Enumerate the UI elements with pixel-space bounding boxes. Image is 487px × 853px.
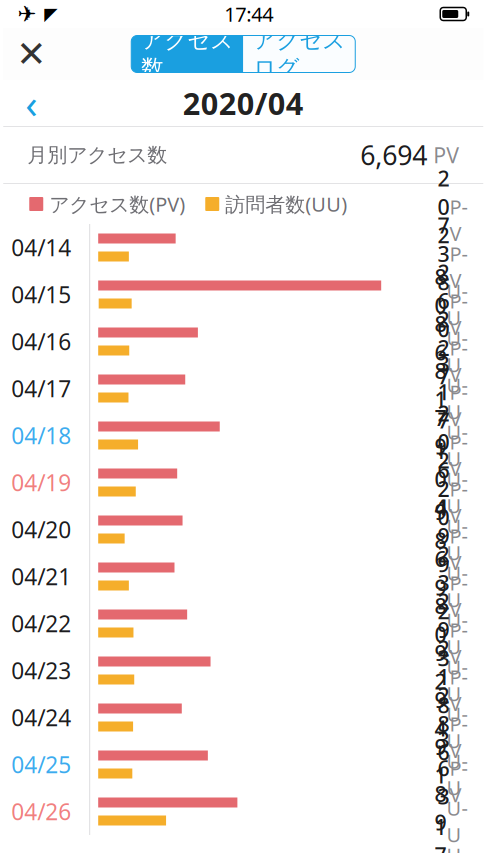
staticText: 79 bbox=[435, 404, 447, 460]
staticText: 91 bbox=[435, 733, 447, 789]
staticText: UU bbox=[447, 345, 468, 425]
staticText: アクセス数(PV) bbox=[49, 191, 185, 217]
staticText: UU bbox=[447, 392, 468, 472]
staticText: UU bbox=[447, 251, 468, 331]
button[interactable]: Previous month bbox=[3, 80, 59, 126]
staticText: 2020/04 bbox=[183, 83, 304, 123]
staticText: ✕ bbox=[16, 34, 46, 74]
staticText: 04/20 bbox=[11, 514, 71, 544]
staticText: PV bbox=[450, 167, 468, 246]
staticText: アクセス数 bbox=[141, 26, 233, 82]
staticText: PV bbox=[450, 637, 468, 716]
staticText: 04/14 bbox=[11, 232, 71, 262]
staticText: 98 bbox=[435, 498, 447, 554]
staticText: PV bbox=[427, 141, 459, 169]
staticText: PV bbox=[450, 543, 468, 622]
staticText: UU bbox=[447, 815, 468, 853]
staticText: 訪問者数(UU) bbox=[225, 191, 347, 217]
staticText: ‹ bbox=[25, 76, 37, 129]
staticText: 04/24 bbox=[11, 702, 71, 732]
staticText: 199 bbox=[438, 493, 450, 578]
staticText: PV bbox=[450, 496, 468, 575]
staticText: 317 bbox=[438, 349, 450, 434]
staticText: 04/25 bbox=[11, 749, 71, 779]
staticText: 80 bbox=[435, 263, 447, 319]
staticText: 04/22 bbox=[11, 608, 71, 638]
staticText: UU bbox=[447, 298, 468, 378]
staticText: 69 bbox=[435, 545, 447, 601]
staticText: ◤ bbox=[44, 4, 57, 24]
staticText: PV bbox=[450, 402, 468, 481]
staticText: UU bbox=[447, 486, 468, 566]
staticText: PV bbox=[450, 261, 468, 340]
staticText: PV bbox=[450, 728, 468, 808]
staticText: 363 bbox=[438, 725, 450, 810]
staticText: ✈ bbox=[17, 1, 36, 27]
staticText: 104 bbox=[435, 436, 447, 521]
staticText: 232 bbox=[438, 540, 450, 625]
staticText: 89 bbox=[435, 780, 447, 836]
staticText: 202 bbox=[438, 164, 450, 249]
staticText: 86 bbox=[435, 310, 447, 366]
staticText: 286 bbox=[438, 681, 450, 766]
staticText: 04/17 bbox=[11, 373, 71, 403]
staticText: UU bbox=[447, 627, 468, 707]
staticText: PV bbox=[450, 214, 468, 293]
staticText: 04/19 bbox=[11, 467, 71, 497]
staticText: UU bbox=[447, 674, 468, 754]
staticText: 04/23 bbox=[11, 655, 71, 685]
staticText: PV bbox=[450, 352, 468, 432]
staticText: 04/21 bbox=[11, 561, 71, 591]
staticText: 92 bbox=[435, 639, 447, 695]
staticText: 177 bbox=[435, 812, 447, 853]
staticText: 94 bbox=[435, 686, 447, 742]
staticText: 293 bbox=[438, 587, 450, 672]
staticText: UU bbox=[447, 721, 468, 801]
staticText: PV bbox=[450, 449, 468, 528]
button[interactable]: アクセス数 bbox=[131, 35, 243, 72]
button[interactable]: Close bbox=[3, 28, 59, 80]
staticText: 17:44 bbox=[224, 1, 273, 27]
staticText: 220 bbox=[438, 446, 450, 531]
staticText: 80 bbox=[435, 592, 447, 648]
staticText: PV bbox=[450, 590, 468, 669]
staticText: 04/26 bbox=[11, 796, 71, 826]
staticText: 738 bbox=[438, 211, 450, 296]
staticText: UU bbox=[447, 580, 468, 660]
staticText: 81 bbox=[435, 357, 447, 413]
staticText: PV bbox=[450, 684, 468, 763]
staticText: UU bbox=[447, 533, 468, 613]
staticText: 260 bbox=[438, 258, 450, 343]
staticText: 227 bbox=[438, 305, 450, 390]
staticText: 月別アクセス数 bbox=[27, 143, 167, 167]
staticText: 04/18 bbox=[11, 420, 71, 450]
staticText: 206 bbox=[438, 399, 450, 484]
staticText: UU bbox=[447, 439, 468, 519]
staticText: 6,694 bbox=[360, 137, 427, 173]
staticText: UU bbox=[447, 768, 468, 848]
staticText: アクセスログ bbox=[253, 26, 345, 82]
staticText: 218 bbox=[438, 634, 450, 719]
staticText: 04/15 bbox=[11, 279, 71, 309]
staticText: 04/16 bbox=[11, 326, 71, 356]
staticText: PV bbox=[450, 308, 468, 387]
button[interactable]: アクセスログ bbox=[243, 35, 355, 72]
